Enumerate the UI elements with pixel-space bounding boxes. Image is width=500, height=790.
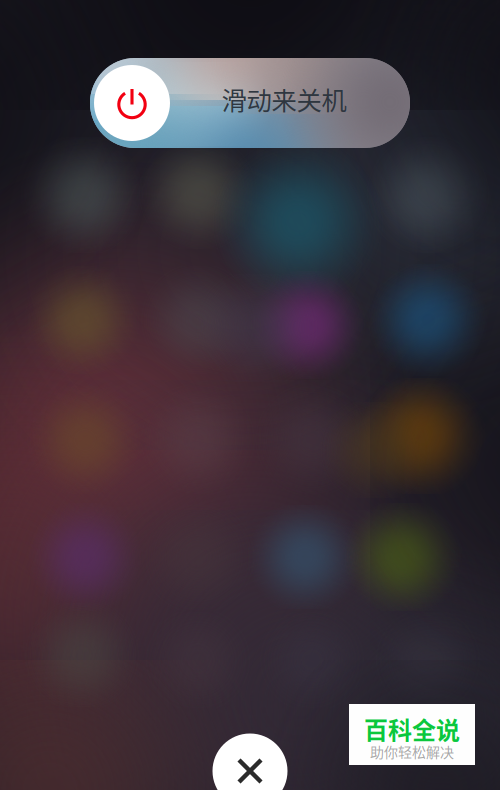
staticText: 助你轻松解决 bbox=[370, 741, 454, 761]
staticText: 百科全说 bbox=[364, 711, 460, 746]
staticText: 滑动来关机 bbox=[221, 81, 346, 117]
button[interactable]: Cancel bbox=[212, 733, 287, 790]
